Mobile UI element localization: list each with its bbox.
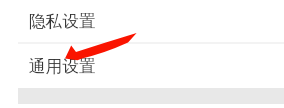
- staticText: 隐私设置: [29, 11, 96, 32]
- other: Annotation arrow pointing to 通用设置: [0, 0, 284, 108]
- staticText: 通用设置: [29, 56, 96, 77]
- button[interactable]: 隐私设置: [18, 0, 284, 42]
- button[interactable]: 通用设置: [18, 44, 284, 88]
